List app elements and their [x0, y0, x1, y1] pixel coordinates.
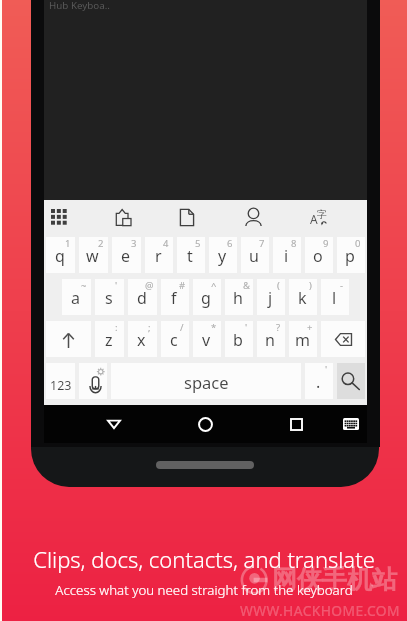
button[interactable]: c [161, 321, 189, 357]
staticText: q [55, 245, 65, 267]
button[interactable]: Contacts [235, 200, 271, 234]
button[interactable]: r [145, 237, 173, 273]
button[interactable]: h [225, 279, 253, 315]
button[interactable]: t [177, 237, 205, 273]
button[interactable]: v [193, 321, 221, 357]
button[interactable]: q [46, 237, 75, 273]
staticText: d [137, 287, 147, 309]
staticText: Access what you need straight from the k… [55, 581, 353, 599]
button[interactable]: n [257, 321, 285, 357]
staticText: b [233, 329, 243, 351]
button[interactable]: Clipboard [105, 200, 141, 234]
button[interactable]: Period [305, 363, 333, 399]
staticText: r [155, 245, 162, 267]
staticText: i [284, 245, 289, 267]
staticText: ( [277, 279, 280, 292]
staticText: x [137, 329, 146, 351]
staticText: h [233, 287, 243, 309]
button[interactable]: a [62, 279, 91, 315]
staticText: ? [276, 321, 281, 334]
staticText: 8 [291, 237, 297, 250]
staticText: Clips, docs, contacts, and translate [33, 544, 375, 574]
button[interactable]: d [128, 279, 157, 315]
button[interactable]: z [95, 321, 124, 357]
staticText: 6 [227, 237, 233, 250]
button[interactable]: Apps [41, 200, 77, 234]
button[interactable]: p [337, 237, 365, 273]
staticText: o [313, 245, 323, 267]
staticText: . [316, 371, 321, 393]
staticText: s [105, 287, 113, 309]
button[interactable]: Search [337, 363, 365, 399]
staticText: 9 [323, 237, 329, 250]
button[interactable]: Backspace [321, 321, 365, 357]
button[interactable]: w [79, 237, 108, 273]
staticText: j [268, 287, 273, 309]
staticText: 5 [195, 237, 201, 250]
button[interactable]: i [273, 237, 301, 273]
button[interactable]: f [161, 279, 189, 315]
staticText: : [115, 321, 118, 334]
staticText: 0 [355, 237, 361, 250]
staticText: ; [148, 321, 151, 334]
staticText: c [170, 329, 178, 351]
button[interactable]: l [321, 279, 349, 315]
button[interactable]: e [112, 237, 141, 273]
button[interactable]: y [209, 237, 237, 273]
button[interactable]: s [95, 279, 124, 315]
staticText: z [105, 329, 113, 351]
staticText: - [340, 279, 344, 292]
button[interactable]: Shift [46, 321, 91, 357]
staticText: ' [325, 363, 328, 376]
button[interactable]: m [289, 321, 317, 357]
staticText: Hub Keyboa.. [49, 0, 110, 12]
staticText: 字 [317, 208, 327, 221]
button[interactable]: j [257, 279, 285, 315]
staticText: + [307, 321, 313, 334]
button[interactable]: Translate [300, 200, 336, 234]
button[interactable]: Documents [169, 200, 205, 234]
staticText: n [265, 329, 275, 351]
button[interactable]: o [305, 237, 333, 273]
staticText: ) [309, 279, 312, 292]
staticText: 2 [98, 237, 104, 250]
staticText: ' [115, 279, 118, 292]
staticText: @ [145, 279, 154, 292]
button[interactable]: Voice input [79, 363, 107, 399]
button[interactable]: Switch keyboard [334, 405, 368, 443]
staticText: 1 [65, 237, 71, 250]
button[interactable]: Back [97, 405, 131, 443]
button[interactable]: b [225, 321, 253, 357]
staticText: space [184, 371, 229, 393]
staticText: 3 [131, 237, 137, 250]
staticText: & [243, 279, 250, 292]
staticText: l [332, 287, 337, 309]
staticText: f [171, 287, 177, 309]
staticText: # [179, 279, 186, 292]
staticText: WWW.HACKHOME.COM [240, 601, 400, 620]
staticText: w [86, 245, 99, 267]
button[interactable]: g [193, 279, 221, 315]
staticText: v [202, 329, 211, 351]
button[interactable]: Space [111, 363, 301, 399]
staticText: u [249, 245, 259, 267]
button[interactable]: Home [188, 405, 222, 443]
button[interactable]: u [241, 237, 269, 273]
staticText: 123 [50, 377, 72, 394]
staticText: k [298, 287, 307, 309]
staticText: e [121, 245, 131, 267]
staticText: g [201, 287, 211, 309]
staticText: 网侠手机站 [272, 564, 397, 595]
button[interactable]: x [128, 321, 157, 357]
staticText: m [295, 329, 310, 351]
button[interactable]: Numbers [46, 363, 75, 399]
staticText: p [345, 245, 355, 267]
staticText: ^ [211, 279, 217, 292]
staticText: t [187, 245, 193, 267]
staticText: 4 [163, 237, 169, 250]
staticText: y [218, 245, 227, 267]
staticText: ~ [81, 279, 87, 292]
button[interactable]: k [289, 279, 317, 315]
staticText: A [310, 211, 318, 227]
button[interactable]: Recents [279, 405, 313, 443]
